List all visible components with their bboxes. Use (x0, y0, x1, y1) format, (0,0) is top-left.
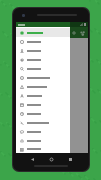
button[interactable] (16, 100, 70, 109)
button[interactable] (16, 100, 88, 111)
button[interactable]: Add (70, 29, 78, 37)
button[interactable] (16, 62, 88, 72)
button[interactable] (16, 50, 88, 62)
button[interactable] (16, 127, 70, 136)
button[interactable] (16, 109, 70, 118)
button[interactable]: Back (22, 153, 42, 165)
button[interactable] (16, 145, 70, 153)
button[interactable] (16, 145, 88, 153)
button[interactable] (16, 111, 88, 120)
button[interactable] (16, 37, 70, 46)
button[interactable] (16, 46, 70, 55)
button[interactable] (16, 82, 70, 91)
button[interactable] (16, 133, 88, 145)
button[interactable] (16, 55, 70, 64)
button[interactable] (16, 118, 70, 127)
button[interactable] (16, 120, 88, 133)
button[interactable]: Recents (61, 153, 80, 165)
button[interactable] (16, 38, 88, 50)
button[interactable]: More options (78, 29, 86, 37)
button[interactable] (16, 73, 70, 82)
button[interactable]: Home (42, 153, 61, 165)
button[interactable] (16, 91, 70, 100)
button[interactable] (16, 28, 70, 37)
button[interactable] (16, 136, 70, 145)
button[interactable] (16, 84, 88, 100)
button[interactable] (16, 64, 70, 73)
button[interactable] (16, 72, 88, 84)
